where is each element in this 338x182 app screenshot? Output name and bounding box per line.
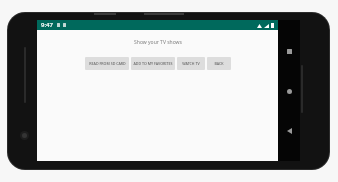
staticText: WATCH TV	[182, 61, 200, 66]
button[interactable]: BACK	[207, 57, 231, 70]
button[interactable]: Home	[280, 82, 298, 100]
button[interactable]: READ FROM SD CARD	[85, 57, 129, 70]
staticText: Show your TV shows	[134, 39, 182, 46]
button[interactable]: Recents	[280, 42, 298, 60]
staticText: READ FROM SD CARD	[89, 61, 126, 66]
staticText: BACK	[214, 61, 224, 66]
staticText: ADD TO MY FAVORITES	[133, 61, 173, 66]
staticText: 9:47	[41, 21, 53, 29]
button[interactable]: Back	[280, 122, 298, 140]
button[interactable]: ADD TO MY FAVORITES	[131, 57, 175, 70]
button[interactable]: WATCH TV	[177, 57, 205, 70]
